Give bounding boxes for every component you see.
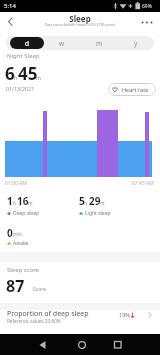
- button[interactable]: d: [10, 37, 44, 49]
- staticText: Proportion of deep sleep: [7, 309, 89, 319]
- staticText: 45: [18, 62, 38, 85]
- staticText: Night Sleep: [7, 52, 40, 60]
- staticText: Sleep score: [7, 266, 39, 274]
- staticText: m: [96, 39, 103, 48]
- staticText: m: [28, 200, 33, 207]
- staticText: Awake: [13, 240, 29, 247]
- staticText: min: [13, 231, 22, 238]
- staticText: Deep sleep: [13, 210, 40, 217]
- staticText: 6: [5, 62, 15, 85]
- staticText: d: [25, 39, 29, 48]
- button[interactable]: [138, 14, 156, 30]
- staticText: 29: [89, 194, 101, 208]
- staticText: Light sleep: [85, 210, 111, 217]
- staticText: Data source:Amazfit Stratos 5:20:13 PM s…: [0, 23, 160, 27]
- staticText: Reference values 20-60%: [7, 318, 61, 324]
- staticText: w: [59, 39, 65, 48]
- staticText: y: [134, 39, 138, 48]
- button[interactable]: m: [81, 37, 117, 49]
- staticText: m: [100, 200, 105, 207]
- staticText: 07:45 AM: [132, 180, 154, 187]
- button[interactable]: [0, 308, 160, 330]
- staticText: h: [13, 200, 16, 207]
- staticText: h: [84, 200, 87, 207]
- button[interactable]: Heart rate: [108, 83, 156, 96]
- staticText: 87: [6, 275, 25, 297]
- staticText: 5:14: [4, 2, 16, 10]
- staticText: Heart rate: [122, 86, 149, 93]
- button[interactable]: [2, 14, 18, 30]
- staticText: 01:00 AM: [5, 180, 27, 187]
- staticText: Score: [33, 286, 46, 293]
- staticText: m: [36, 74, 42, 81]
- staticText: 01/13/2021: [6, 85, 35, 92]
- button[interactable]: y: [118, 37, 154, 49]
- staticText: 5: [79, 194, 85, 208]
- staticText: 0: [7, 226, 13, 240]
- staticText: 16: [17, 194, 29, 208]
- staticText: Sleep: [0, 13, 160, 24]
- staticText: h: [14, 74, 18, 81]
- staticText: 69%: [142, 3, 152, 10]
- button[interactable]: w: [44, 37, 80, 49]
- staticText: 19%: [119, 311, 130, 318]
- staticText: 1: [7, 194, 13, 208]
